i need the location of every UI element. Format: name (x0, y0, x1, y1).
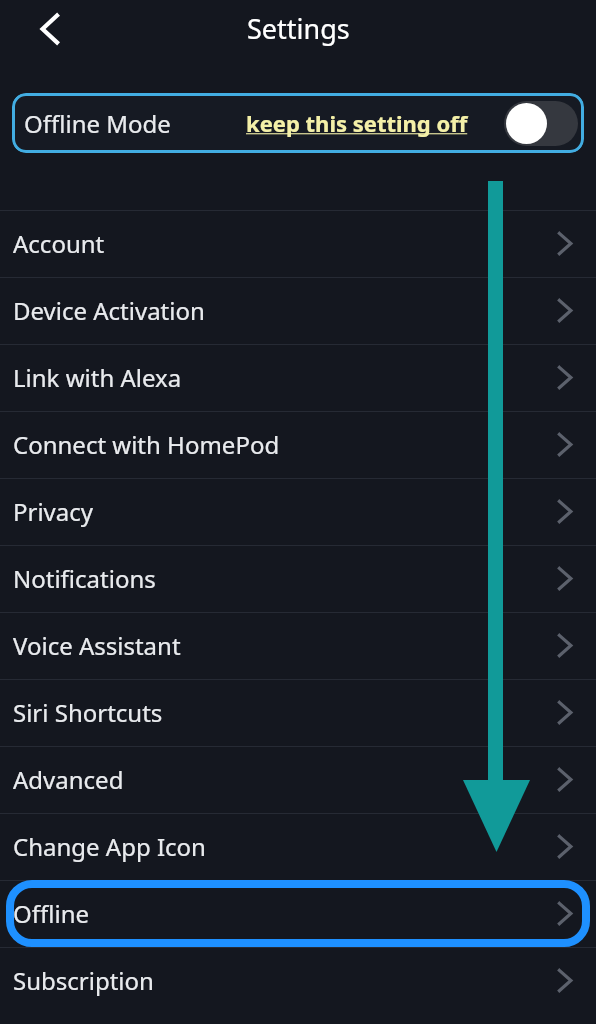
staticText: Offline Mode (24, 107, 171, 140)
button[interactable]: Offline Mode toggle (504, 101, 578, 146)
button[interactable]: Subscription (0, 947, 596, 1014)
button[interactable]: Advanced (0, 746, 596, 813)
staticText: Siri Shortcuts (13, 696, 163, 729)
staticText: Link with Alexa (13, 361, 182, 394)
button[interactable]: Back (22, 1, 78, 57)
button[interactable]: Change App Icon (0, 813, 596, 880)
button[interactable]: Link with Alexa (0, 344, 596, 411)
button[interactable]: Siri Shortcuts (0, 679, 596, 746)
button[interactable]: Offline Mode (12, 93, 584, 153)
button[interactable]: Account (0, 210, 596, 277)
staticText: Privacy (13, 495, 94, 528)
staticText: Advanced (13, 763, 124, 796)
staticText: Subscription (13, 964, 154, 997)
button[interactable]: Notifications (0, 545, 596, 612)
button[interactable]: Privacy (0, 478, 596, 545)
staticText: Offline (13, 897, 90, 930)
staticText: Notifications (13, 562, 156, 595)
staticText: Account (13, 227, 105, 260)
staticText: Device Activation (13, 294, 205, 327)
button[interactable]: Device Activation (0, 277, 596, 344)
staticText: keep this setting off (246, 108, 468, 138)
staticText: Change App Icon (13, 830, 206, 863)
staticText: Voice Assistant (13, 629, 181, 662)
staticText: Connect with HomePod (13, 428, 280, 461)
button[interactable]: Connect with HomePod (0, 411, 596, 478)
button[interactable]: Offline (0, 880, 596, 947)
staticText: Settings (247, 10, 350, 47)
button[interactable]: Voice Assistant (0, 612, 596, 679)
